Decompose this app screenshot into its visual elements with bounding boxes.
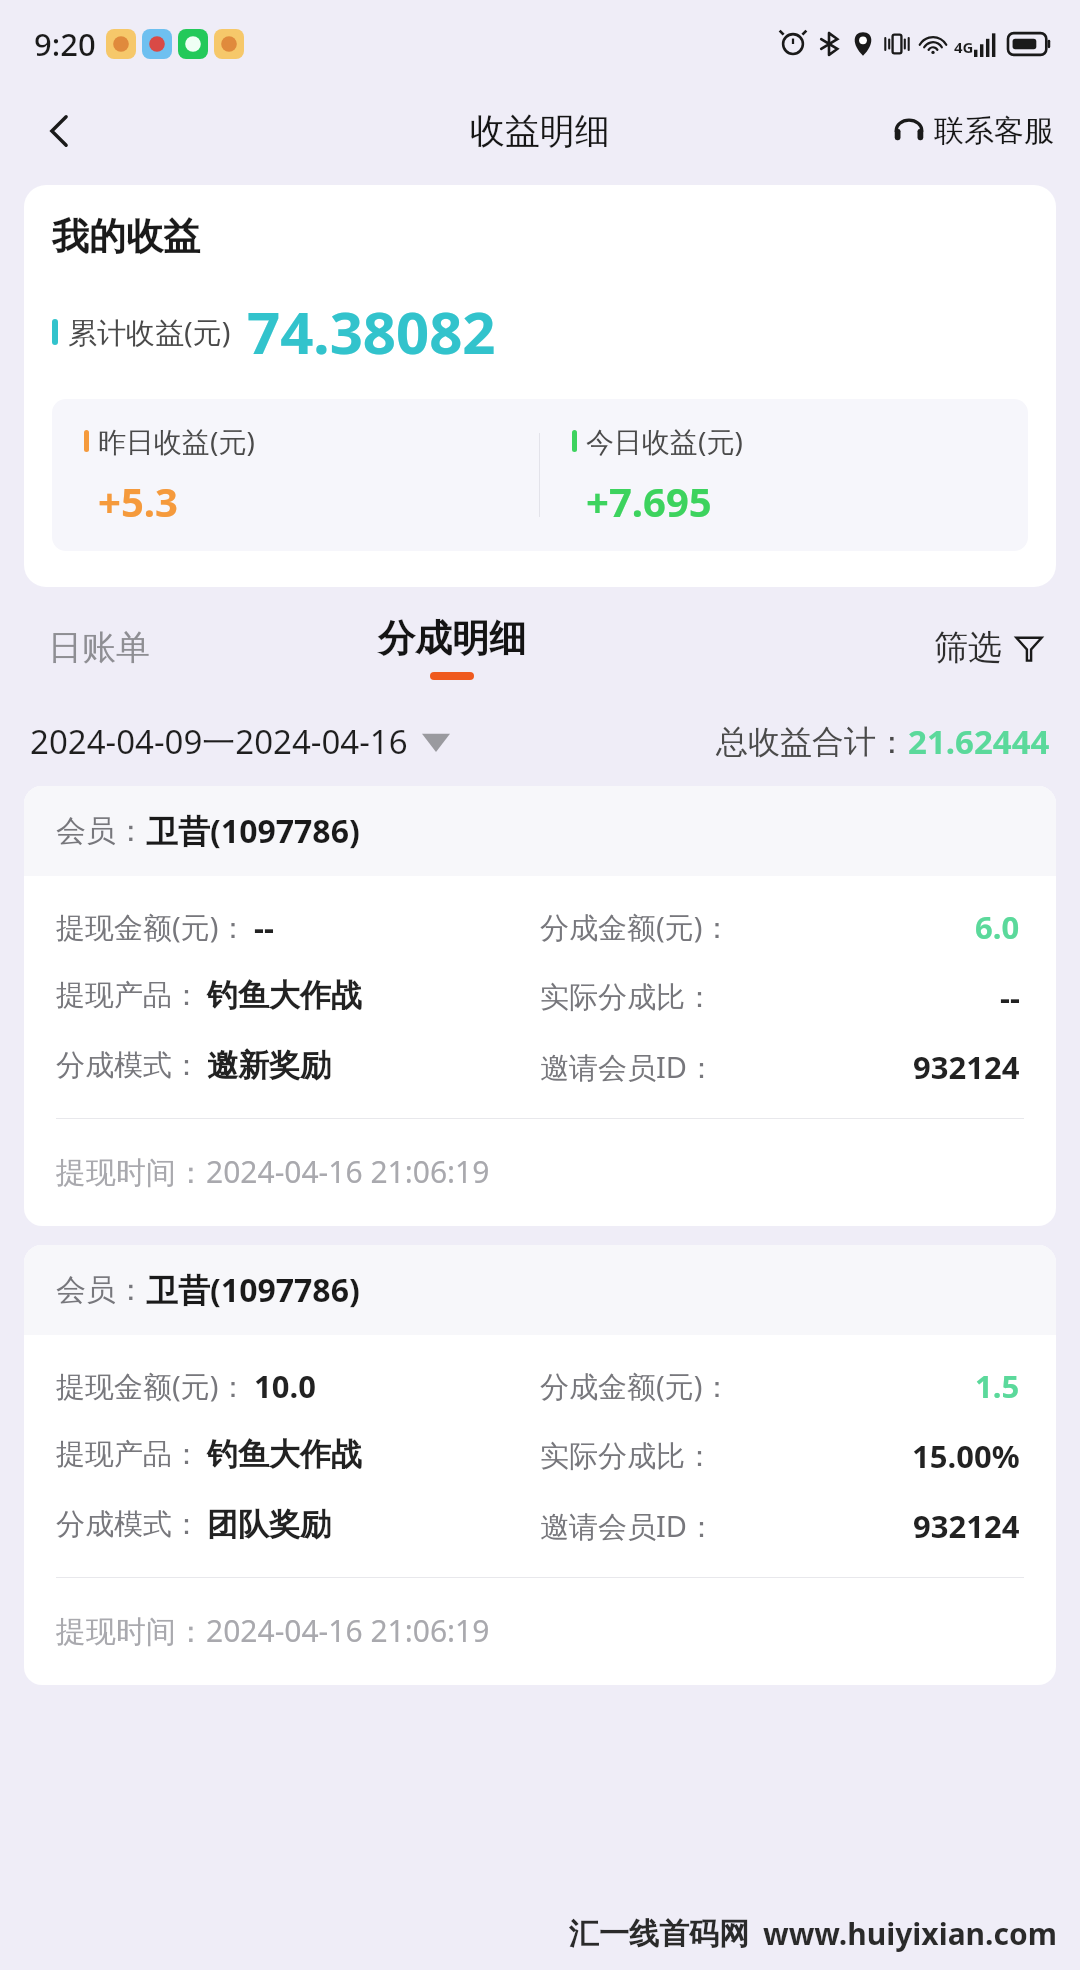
staticText: 提现产品： xyxy=(56,1436,201,1473)
button[interactable]: Back xyxy=(22,93,98,169)
staticText: 钓鱼大作战 xyxy=(207,976,362,1015)
button[interactable]: 会员： xyxy=(24,786,1056,1226)
staticText: 会员： xyxy=(56,1271,146,1309)
staticText: 卫昔(1097786) xyxy=(146,809,360,853)
staticText: 分成金额(元)： xyxy=(540,1366,732,1406)
staticText: 提现金额(元)： xyxy=(56,1366,248,1406)
staticText: 6.0 xyxy=(975,906,1020,948)
staticText: 分成金额(元)： xyxy=(540,907,732,947)
staticText: 邀新奖励 xyxy=(207,1046,331,1085)
staticText: 932124 xyxy=(913,1046,1020,1088)
staticText: 我的收益 xyxy=(52,213,200,260)
staticText: 实际分成比： xyxy=(540,979,714,1016)
staticText: 提现时间：2024-04-16 21:06:19 xyxy=(56,1610,490,1651)
staticText: 汇一线首码网 xyxy=(569,1915,749,1953)
staticText: 总收益合计： xyxy=(716,722,908,762)
staticText: 15.00% xyxy=(912,1435,1020,1477)
staticText: -- xyxy=(254,906,274,948)
button[interactable]: 2024-04-09一2024-04-16 xyxy=(30,713,450,770)
button[interactable]: 筛选 xyxy=(926,616,1052,679)
button[interactable]: 联系客服 xyxy=(888,104,1058,158)
staticText: www.huiyixian.com xyxy=(763,1913,1058,1954)
staticText: 邀请会员ID： xyxy=(540,1506,717,1546)
staticText: 9:20 xyxy=(34,23,96,65)
staticText: 10.0 xyxy=(254,1365,316,1407)
staticText: 1.5 xyxy=(975,1365,1020,1407)
staticText: 收益明细 xyxy=(470,109,610,153)
staticText: 会员： xyxy=(56,812,146,850)
staticText: 实际分成比： xyxy=(540,1438,714,1475)
staticText: 筛选 xyxy=(934,626,1002,669)
staticText: 4G xyxy=(954,37,974,57)
staticText: 今日收益(元) xyxy=(586,422,743,460)
staticText: 联系客服 xyxy=(934,112,1054,150)
staticText: 团队奖励 xyxy=(207,1505,331,1544)
staticText: 21.62444 xyxy=(908,719,1050,764)
button[interactable]: 会员： xyxy=(24,1245,1056,1685)
staticText: +5.3 xyxy=(98,474,178,528)
staticText: 提现时间：2024-04-16 21:06:19 xyxy=(56,1151,490,1192)
staticText: 分成模式： xyxy=(56,1506,201,1543)
staticText: 钓鱼大作战 xyxy=(207,1435,362,1474)
staticText: 提现金额(元)： xyxy=(56,907,248,947)
staticText: 邀请会员ID： xyxy=(540,1047,717,1087)
button[interactable]: 分成明细 xyxy=(364,615,540,680)
staticText: 提现产品： xyxy=(56,977,201,1014)
staticText: 日账单 xyxy=(48,626,150,669)
staticText: 累计收益(元) xyxy=(68,312,231,352)
staticText: 932124 xyxy=(913,1505,1020,1547)
staticText: 74.38082 xyxy=(247,292,496,371)
staticText: 卫昔(1097786) xyxy=(146,1268,360,1312)
staticText: 2024-04-09一2024-04-16 xyxy=(30,719,408,764)
staticText: 昨日收益(元) xyxy=(98,422,255,460)
staticText: 分成明细 xyxy=(378,615,526,662)
staticText: 分成模式： xyxy=(56,1047,201,1084)
staticText: +7.695 xyxy=(586,474,712,528)
staticText: -- xyxy=(1000,976,1020,1018)
button[interactable]: 日账单 xyxy=(38,616,160,679)
